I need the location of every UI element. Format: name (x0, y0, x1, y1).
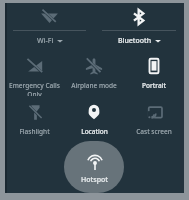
staticText: Emergency Calls Only (5, 81, 64, 96)
button[interactable]: Emergency Calls Only (5, 50, 64, 96)
staticText: Flashlight (19, 127, 50, 136)
button[interactable]: Portrait (124, 50, 184, 96)
staticText: Airplane mode (71, 81, 117, 90)
staticText: Portrait (142, 81, 166, 90)
staticText: Cast screen (136, 127, 172, 136)
button[interactable]: Hotspot (64, 141, 124, 193)
button[interactable]: Location (64, 96, 124, 140)
button[interactable]: Airplane mode (64, 50, 124, 96)
button[interactable]: Cast screen (124, 96, 184, 140)
staticText: Bluetooth (118, 36, 152, 46)
button[interactable]: Bluetooth (94, 3, 184, 50)
staticText: Wi-Fi (37, 36, 54, 46)
button[interactable]: Flashlight (5, 96, 64, 140)
button[interactable]: Wi-Fi (5, 3, 94, 50)
staticText: Location (81, 127, 108, 136)
staticText: Hotspot (81, 175, 108, 185)
